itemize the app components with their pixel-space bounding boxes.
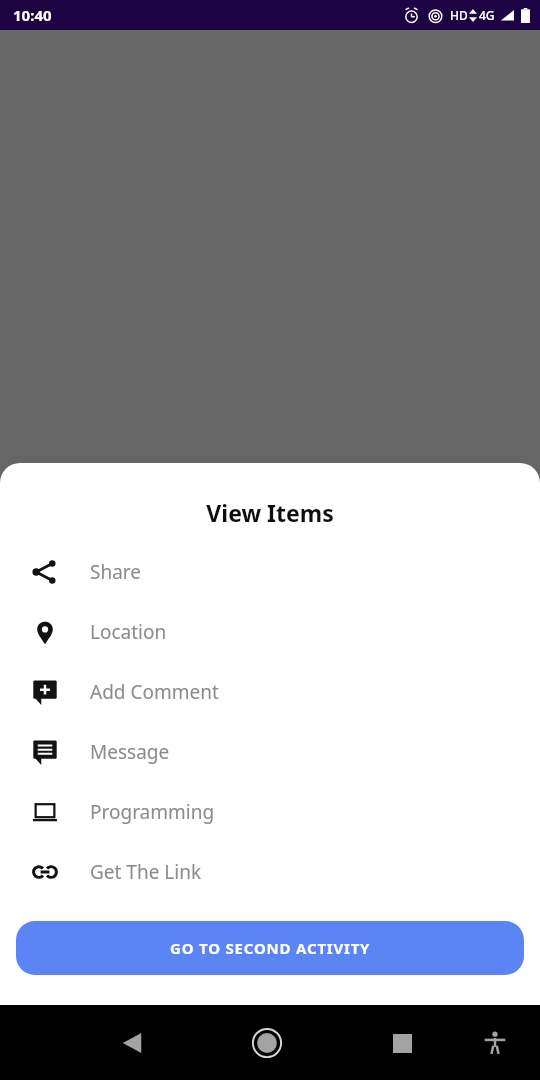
button[interactable]: Share [0, 542, 540, 602]
staticText: GO TO SECOND ACTIVITY [170, 938, 371, 958]
button[interactable]: GO TO SECOND ACTIVITY [16, 921, 524, 975]
staticText: Share [90, 559, 142, 585]
button[interactable]: Back [100, 1011, 164, 1075]
staticText: 10:40 [13, 5, 52, 25]
button[interactable]: Home [235, 1011, 299, 1075]
staticText: Add Comment [90, 679, 219, 705]
staticText: Get The Link [90, 859, 202, 885]
staticText: View Items [0, 497, 540, 528]
button[interactable]: Programming [0, 782, 540, 842]
staticText: Message [90, 739, 170, 765]
button[interactable]: Get The Link [0, 842, 540, 902]
button[interactable]: Location [0, 602, 540, 662]
button[interactable]: Add Comment [0, 662, 540, 722]
button[interactable]: Recents [370, 1011, 434, 1075]
staticText: Programming [90, 799, 215, 825]
staticText: HD [450, 7, 468, 23]
staticText: Location [90, 619, 167, 645]
button[interactable]: Accessibility [469, 1017, 521, 1069]
button[interactable]: Message [0, 722, 540, 782]
staticText: 4G [479, 7, 495, 23]
